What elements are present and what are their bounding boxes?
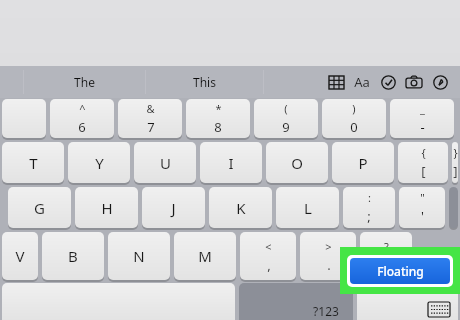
staticText: 6 <box>78 118 86 136</box>
staticText: ) <box>352 101 356 116</box>
button[interactable]: } <box>452 142 458 183</box>
staticText: The <box>74 74 95 90</box>
button[interactable]: Markup <box>428 70 452 94</box>
button[interactable]: : <box>343 187 395 228</box>
button[interactable]: Insert table <box>324 70 348 94</box>
button[interactable]: P <box>332 142 394 183</box>
staticText: 7 <box>147 118 155 136</box>
button[interactable]: L <box>276 187 339 228</box>
staticText: L <box>304 198 312 218</box>
staticText: This <box>193 74 216 90</box>
staticText: ? <box>384 239 389 254</box>
button[interactable]: N <box>108 232 170 280</box>
button[interactable]: M <box>174 232 236 280</box>
staticText: ] <box>453 162 458 180</box>
button[interactable]: > <box>300 232 356 280</box>
button[interactable]: & <box>118 99 182 138</box>
staticText: H <box>101 198 113 218</box>
staticText: Floating <box>377 263 424 279</box>
button[interactable]: Camera <box>402 70 426 94</box>
staticText: . <box>327 256 331 274</box>
button[interactable]: O <box>266 142 328 183</box>
staticText: , <box>267 256 271 274</box>
staticText: 0 <box>350 118 358 136</box>
button[interactable]: B <box>42 232 104 280</box>
button[interactable]: ? <box>360 232 412 280</box>
button[interactable]: T <box>2 142 64 183</box>
button[interactable]: ?123 <box>239 283 353 320</box>
staticText: [ <box>421 162 426 180</box>
staticText: & <box>146 101 155 116</box>
button[interactable]: Hide keyboard <box>357 283 458 320</box>
staticText: N <box>133 246 145 266</box>
button[interactable]: G <box>8 187 71 228</box>
button[interactable]: Floating <box>350 258 450 284</box>
staticText: ; <box>367 207 371 225</box>
button[interactable]: ) <box>322 99 386 138</box>
button[interactable]: I <box>200 142 262 183</box>
button[interactable]: ( <box>254 99 318 138</box>
staticText: K <box>236 198 246 218</box>
button[interactable]: This <box>146 66 263 98</box>
staticText: B <box>68 246 78 266</box>
button[interactable]: Space <box>2 283 235 320</box>
button[interactable]: _ <box>390 99 454 138</box>
button[interactable]: ^ <box>50 99 114 138</box>
staticText: V <box>15 246 25 266</box>
staticText: - <box>420 118 425 136</box>
staticText: * <box>215 101 222 116</box>
staticText: T <box>29 153 38 173</box>
button[interactable]: J <box>142 187 205 228</box>
staticText: I <box>228 153 234 173</box>
button[interactable]: U <box>134 142 196 183</box>
staticText: 9 <box>282 118 290 136</box>
staticText: O <box>291 153 303 173</box>
staticText: ( <box>284 101 288 116</box>
staticText: ' <box>421 207 424 225</box>
button[interactable]: Y <box>68 142 130 183</box>
button[interactable] <box>2 99 46 138</box>
button[interactable]: return <box>449 187 458 228</box>
button[interactable]: H <box>75 187 138 228</box>
button[interactable]: The <box>24 66 145 98</box>
button[interactable]: { <box>398 142 448 183</box>
staticText: ^ <box>79 101 86 116</box>
button[interactable]: V <box>2 232 38 280</box>
staticText: 8 <box>214 118 222 136</box>
button[interactable]: Checklist <box>376 70 400 94</box>
staticText: ?123 <box>313 303 339 319</box>
staticText: } <box>453 145 458 160</box>
staticText: < <box>265 239 272 254</box>
button[interactable]: K <box>209 187 272 228</box>
staticText: M <box>198 246 212 266</box>
staticText: Y <box>95 153 104 173</box>
staticText: { <box>421 145 426 160</box>
staticText: P <box>358 153 368 173</box>
button[interactable]: * <box>186 99 250 138</box>
button[interactable]: Text formatting <box>350 70 374 94</box>
staticText: " <box>420 190 425 205</box>
staticText: / <box>384 256 389 274</box>
staticText: _ <box>420 101 425 116</box>
button[interactable]: " <box>399 187 445 228</box>
staticText: U <box>160 153 171 173</box>
staticText: Aa <box>354 73 370 91</box>
staticText: : <box>368 190 371 205</box>
staticText: J <box>171 198 176 218</box>
staticText: > <box>325 239 332 254</box>
staticText: G <box>34 198 45 218</box>
button[interactable]: < <box>240 232 296 280</box>
